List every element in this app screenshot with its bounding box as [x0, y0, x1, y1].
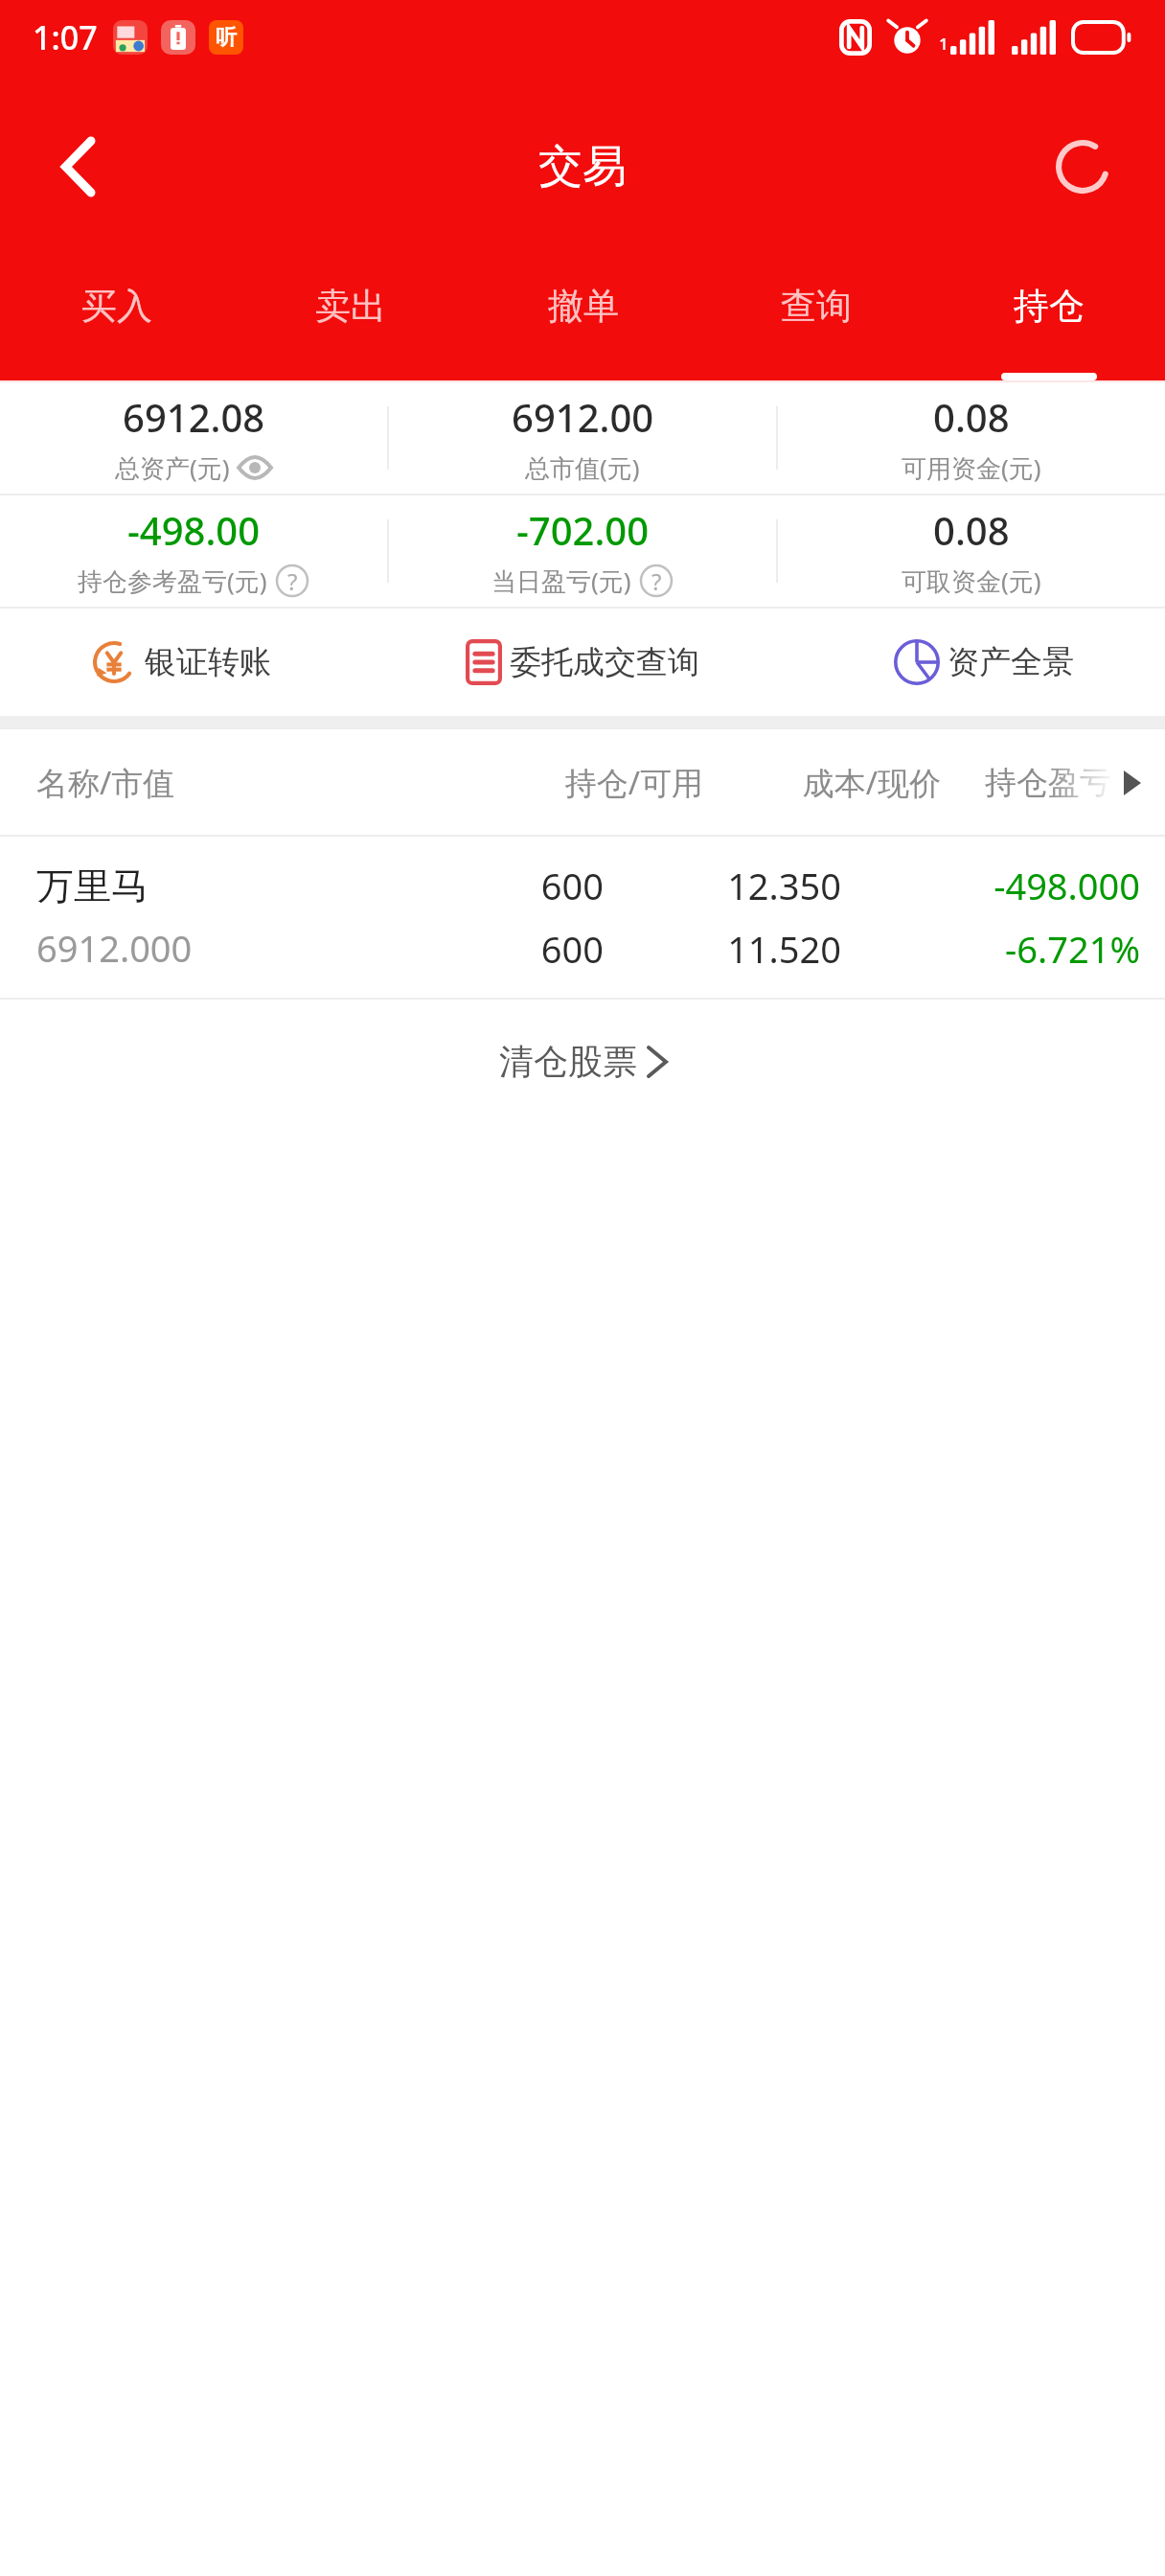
staticText: -6.721%	[887, 924, 1140, 974]
button[interactable]: 撤单	[467, 259, 699, 380]
button[interactable]: -498.00	[0, 495, 387, 607]
staticText: 1:07	[33, 15, 98, 59]
staticText: 0.08	[933, 391, 1010, 443]
staticText: -498.000	[887, 861, 1140, 910]
staticText: 银证转账	[145, 642, 271, 682]
button[interactable]: 万里马	[0, 837, 1165, 998]
staticText: 持仓盈亏	[985, 763, 1111, 803]
button[interactable]: 6912.08	[0, 382, 387, 494]
staticText: ?	[287, 565, 298, 597]
button[interactable]: -702.00	[389, 495, 776, 607]
button[interactable]: 清仓股票	[0, 1000, 1165, 1122]
staticText: 11.520	[650, 924, 841, 974]
staticText: 600	[412, 861, 604, 910]
staticText: 撤单	[548, 284, 619, 329]
staticText: 12.350	[650, 861, 841, 910]
staticText: 资产全景	[948, 642, 1074, 682]
staticText: 听	[216, 24, 237, 51]
staticText: 可用资金(元)	[902, 450, 1041, 485]
staticText: 6912.000	[36, 923, 193, 973]
staticText: 名称/市值	[36, 761, 175, 804]
staticText: 查询	[781, 284, 852, 329]
button[interactable]: More columns	[1113, 764, 1152, 802]
staticText: -498.00	[127, 504, 261, 556]
button[interactable]: 持仓	[932, 259, 1165, 380]
staticText: 可取资金(元)	[902, 563, 1041, 598]
button[interactable]: 委托成交查询	[361, 609, 803, 716]
button[interactable]: Refresh	[1039, 123, 1127, 211]
staticText: 持仓/可用	[496, 761, 703, 804]
staticText: 6912.00	[512, 391, 654, 443]
staticText: 1	[939, 33, 948, 55]
button[interactable]: 0.08	[778, 382, 1165, 494]
staticText: 卖出	[315, 284, 386, 329]
button[interactable]: 银证转账	[0, 609, 361, 716]
button[interactable]: 卖出	[234, 259, 467, 380]
staticText: 总资产(元)	[115, 450, 230, 485]
staticText: -702.00	[516, 504, 650, 556]
staticText: 万里马	[36, 862, 148, 909]
staticText: 0.08	[933, 504, 1010, 556]
button[interactable]: 0.08	[778, 495, 1165, 607]
button[interactable]: 6912.00	[389, 382, 776, 494]
button[interactable]: Back	[25, 115, 128, 218]
staticText: 600	[412, 924, 604, 974]
staticText: ?	[651, 565, 662, 597]
staticText: 6912.08	[123, 391, 265, 443]
staticText: 交易	[538, 139, 627, 195]
staticText: 买入	[81, 284, 152, 329]
staticText: 总市值(元)	[525, 450, 640, 485]
staticText: 清仓股票	[499, 1040, 637, 1083]
staticText: 委托成交查询	[510, 642, 699, 682]
staticText: 持仓参考盈亏(元)	[78, 563, 267, 598]
button[interactable]: 资产全景	[803, 609, 1165, 716]
staticText: 成本/现价	[749, 761, 941, 804]
button[interactable]: 买入	[0, 259, 234, 380]
staticText: 持仓	[1014, 284, 1085, 329]
button[interactable]: 查询	[699, 259, 932, 380]
staticText: 当日盈亏(元)	[491, 563, 631, 598]
